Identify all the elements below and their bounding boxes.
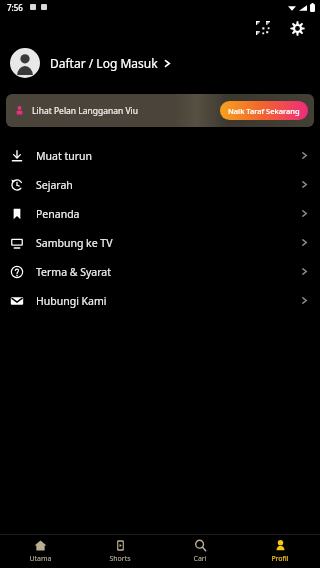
staticText: Terma & Syarat bbox=[36, 265, 112, 279]
staticText: Sejarah bbox=[36, 178, 73, 192]
button[interactable]: Sambung ke TV bbox=[0, 228, 320, 257]
button[interactable]: Utama bbox=[0, 535, 80, 568]
button[interactable]: Naik Taraf Sekarang bbox=[220, 101, 308, 120]
button[interactable]: Shorts bbox=[80, 535, 160, 568]
button[interactable]: Penanda bbox=[0, 199, 320, 228]
button[interactable]: Terma & Syarat bbox=[0, 257, 320, 286]
staticText: Profil bbox=[271, 554, 289, 564]
button[interactable]: Scan QR code bbox=[248, 14, 278, 42]
staticText: Cari bbox=[193, 554, 207, 564]
button[interactable]: Sejarah bbox=[0, 170, 320, 199]
button[interactable]: Cari bbox=[160, 535, 240, 568]
staticText: Penanda bbox=[36, 207, 80, 221]
button[interactable]: Daftar / Log Masuk bbox=[0, 42, 320, 84]
button[interactable]: Settings bbox=[282, 14, 312, 42]
button[interactable]: Hubungi Kami bbox=[0, 286, 320, 315]
staticText: Naik Taraf Sekarang bbox=[228, 106, 300, 116]
staticText: Daftar / Log Masuk bbox=[50, 55, 158, 71]
staticText: Hubungi Kami bbox=[36, 294, 107, 308]
button[interactable]: Muat turun bbox=[0, 141, 320, 170]
button[interactable]: Lihat Pelan Langganan Viu bbox=[6, 94, 314, 127]
staticText: Sambung ke TV bbox=[36, 236, 113, 250]
button[interactable]: Profil bbox=[240, 535, 320, 568]
staticText: Shorts bbox=[109, 554, 131, 564]
staticText: Lihat Pelan Langganan Viu bbox=[32, 105, 139, 117]
staticText: Muat turun bbox=[36, 149, 93, 163]
staticText: Utama bbox=[29, 554, 52, 564]
staticText: 7:56 bbox=[7, 2, 23, 13]
